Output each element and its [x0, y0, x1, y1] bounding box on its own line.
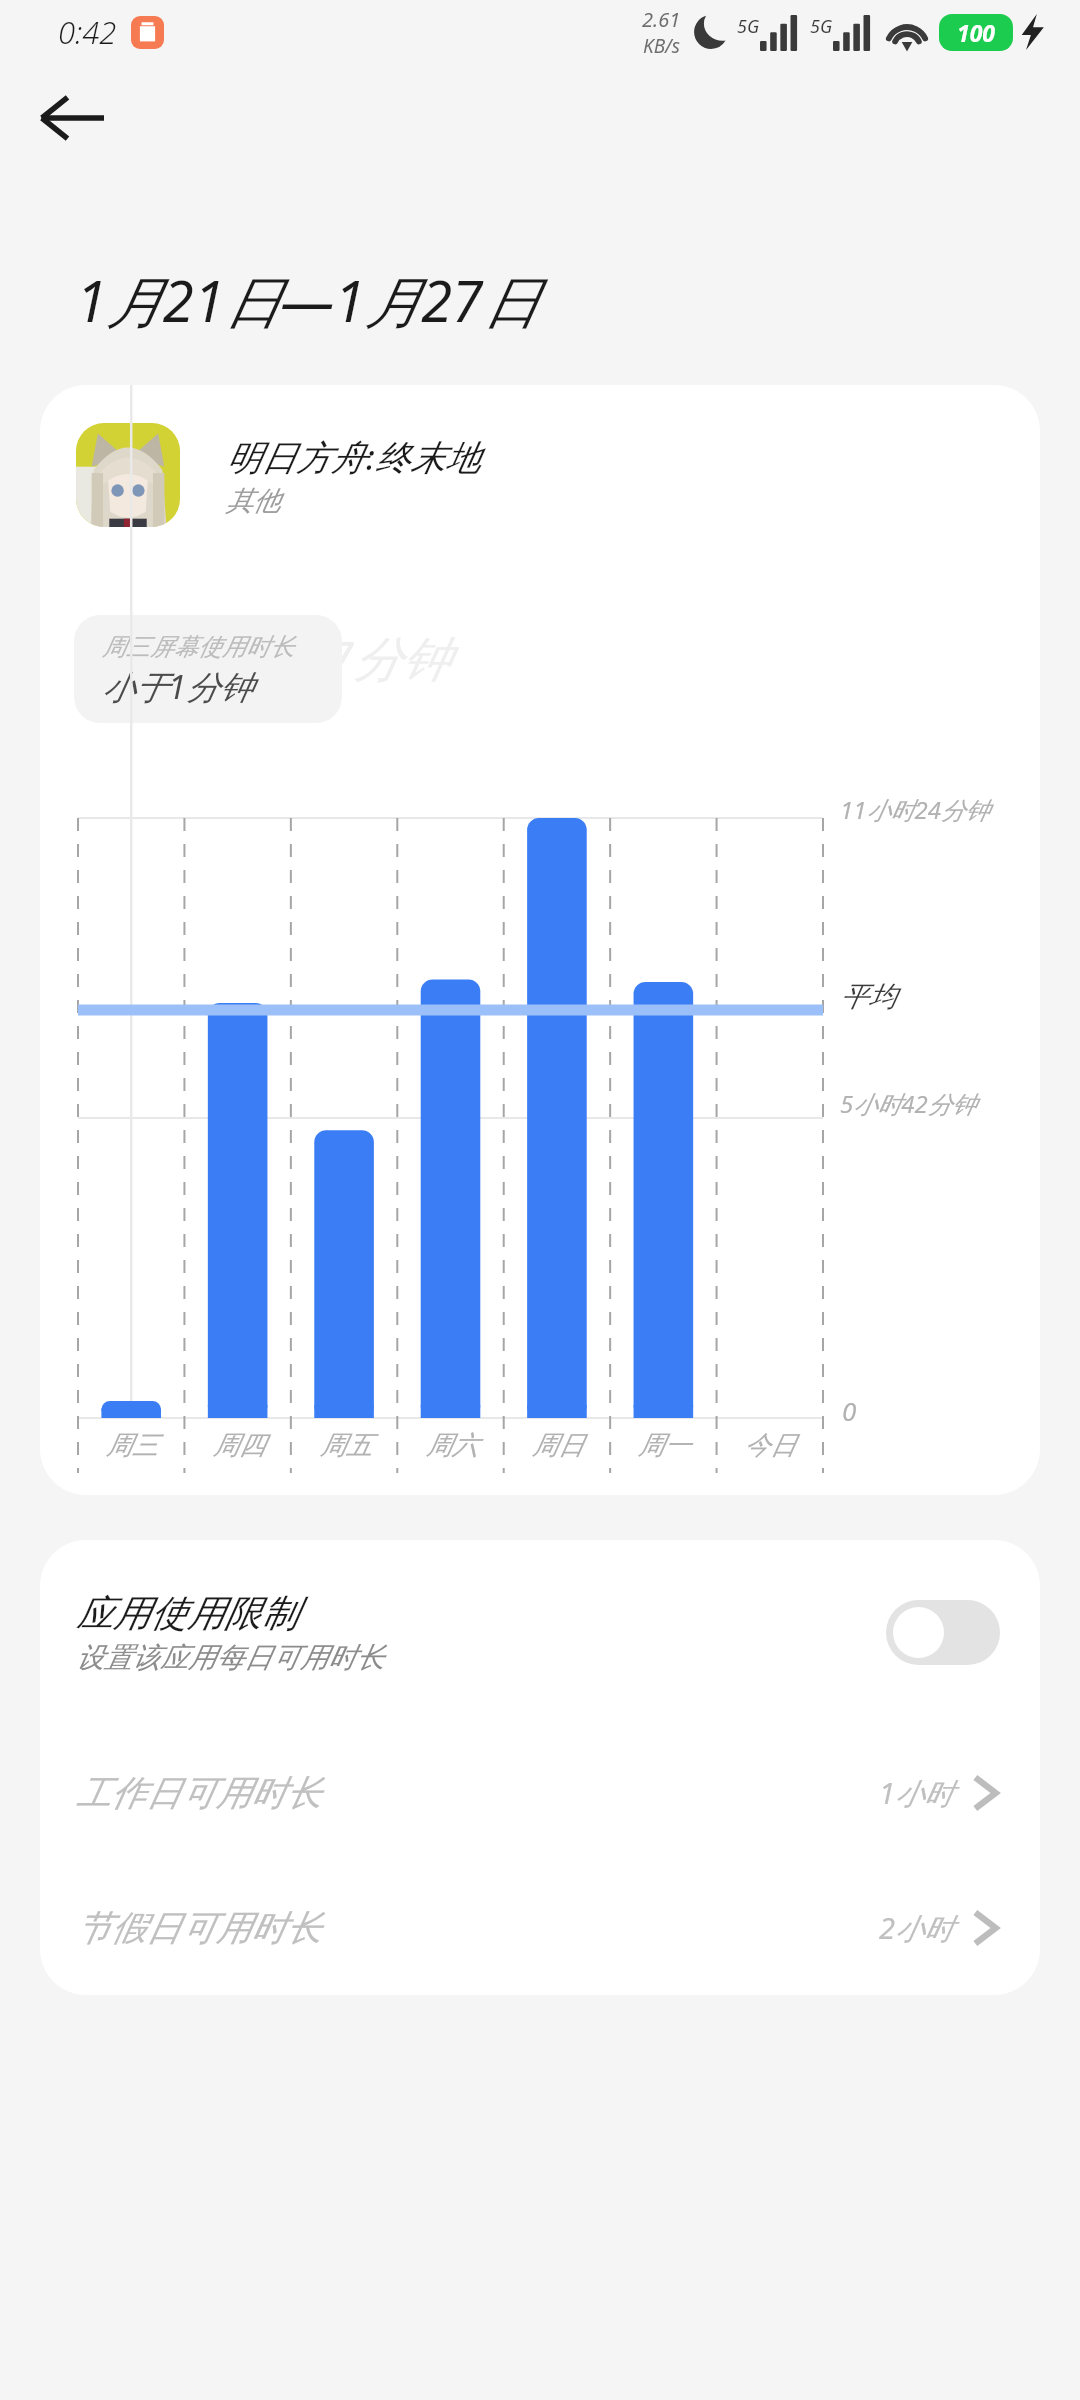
staticText: 0 [842, 1393, 857, 1428]
staticText: 平均 [840, 979, 896, 1014]
staticText: KB/s [643, 33, 681, 59]
button[interactable]: 应用使用限制 [40, 1540, 1040, 1725]
staticText: 2.61 [642, 6, 681, 33]
staticText: 设置该应用每日可用时长 [76, 1640, 384, 1675]
button[interactable]: 节假日可用时长 [40, 1860, 1040, 1995]
staticText: 100 [957, 17, 996, 48]
staticText: 1小时 [879, 1773, 953, 1813]
staticText: 1月21日—1月27日 [76, 262, 539, 338]
button[interactable]: 明日方舟:终末地 [76, 423, 1004, 527]
staticText: 周六 [426, 1429, 478, 1462]
button[interactable]: Back [24, 70, 120, 166]
staticText: 应用使用限制 [76, 1590, 298, 1637]
staticText: 节假日可用时长 [76, 1906, 879, 1950]
staticText: 周四 [213, 1429, 265, 1462]
staticText: 今日 [744, 1429, 796, 1462]
staticText: 5小时42分钟 [840, 1087, 976, 1120]
staticText: 5G [737, 14, 760, 39]
staticText: 工作日可用时长 [76, 1771, 879, 1815]
staticText: 周三屏幕使用时长 [102, 632, 294, 662]
staticText: 周一 [638, 1429, 690, 1462]
staticText: 5G [810, 14, 833, 39]
staticText: 明日方舟:终末地 [226, 433, 480, 481]
staticText: 11小时24分钟 [840, 793, 989, 826]
staticText: 0:42 [58, 11, 117, 53]
staticText: 小于1分钟 [102, 664, 253, 709]
staticText: 2小时 [879, 1908, 953, 1948]
staticText: 其他 [226, 484, 280, 518]
staticText: 周五 [320, 1429, 372, 1462]
staticText: 周日 [532, 1429, 584, 1462]
button[interactable]: Toggle app usage limit [886, 1600, 1000, 1665]
button[interactable]: 工作日可用时长 [40, 1725, 1040, 1860]
staticText: 日均7小时47分钟 [82, 625, 450, 691]
staticText: 周三 [106, 1429, 158, 1462]
